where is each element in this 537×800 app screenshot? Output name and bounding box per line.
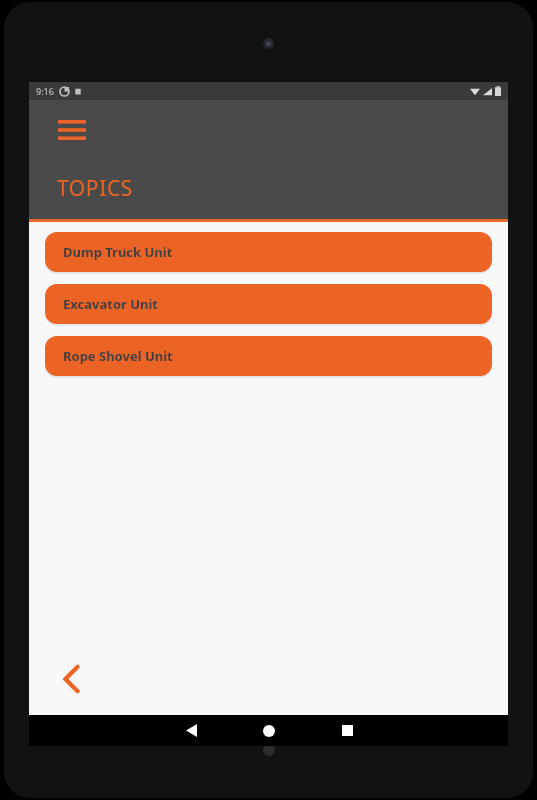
button[interactable]: Home: [242, 715, 296, 746]
staticText: Dump Truck Unit: [63, 243, 173, 261]
button[interactable]: Recent apps: [320, 715, 374, 746]
staticText: Rope Shovel Unit: [63, 347, 173, 365]
staticText: Excavator Unit: [63, 295, 159, 313]
button[interactable]: Back: [49, 657, 93, 701]
button[interactable]: Back: [164, 715, 218, 746]
button[interactable]: Excavator Unit: [45, 284, 492, 324]
button[interactable]: Rope Shovel Unit: [45, 336, 492, 376]
button[interactable]: Dump Truck Unit: [45, 232, 492, 272]
staticText: 9:16: [36, 85, 54, 97]
staticText: TOPICS: [57, 174, 133, 203]
button[interactable]: Open navigation menu: [54, 112, 90, 148]
